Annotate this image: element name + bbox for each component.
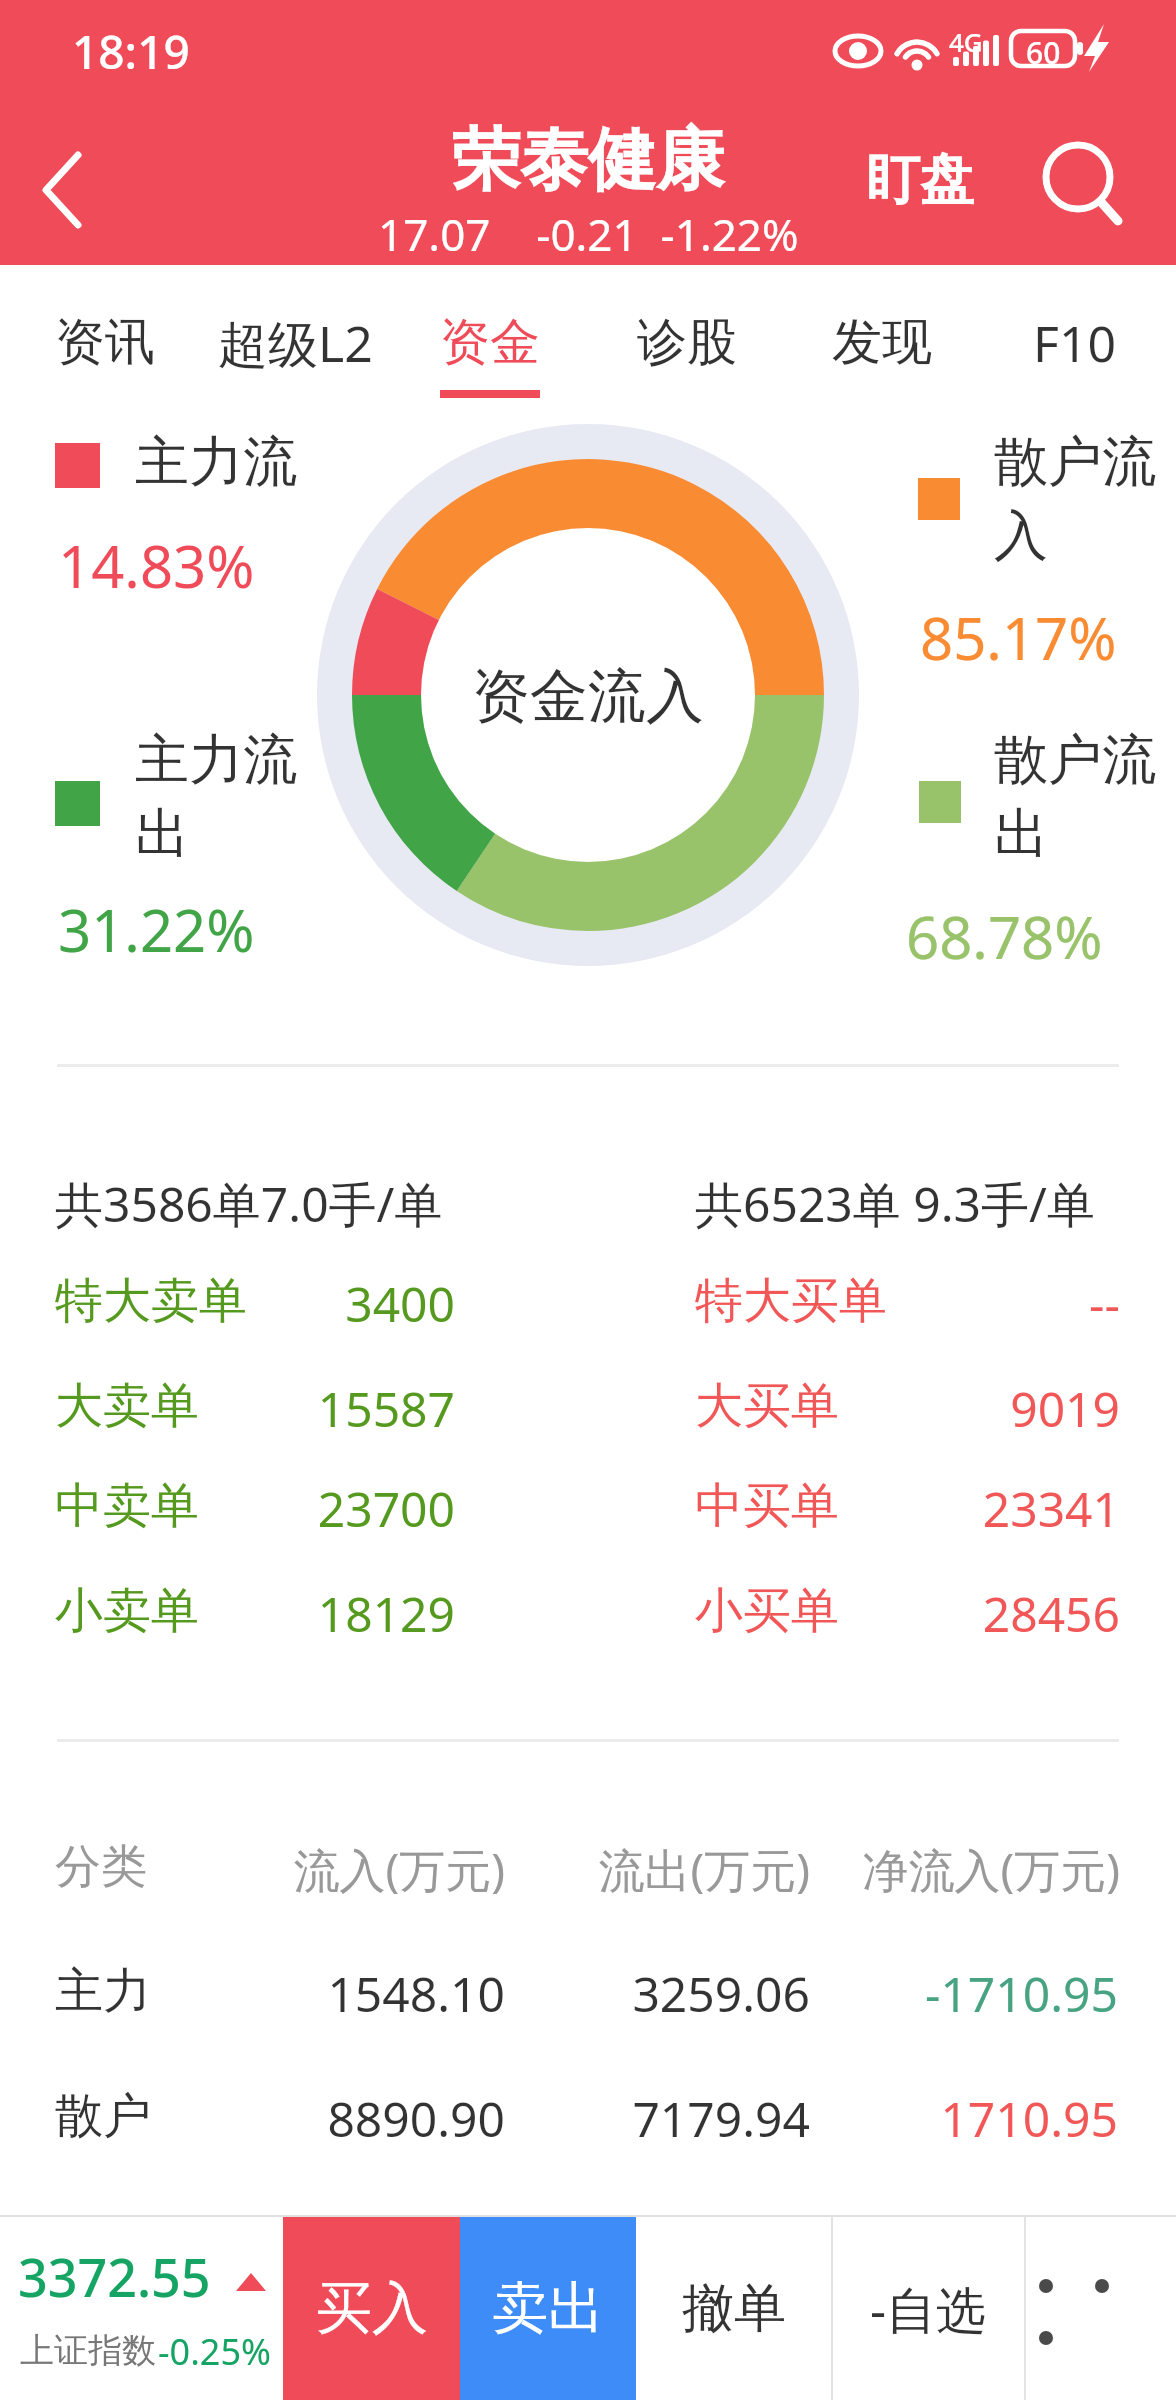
staticText: 17.07 -0.21 -1.22% bbox=[378, 204, 799, 264]
staticText: 散户流入 bbox=[994, 428, 1170, 570]
staticText: 18129 bbox=[317, 1581, 455, 1646]
button[interactable]: 资金 bbox=[425, 265, 555, 420]
staticText: -0.25% bbox=[158, 2327, 271, 2376]
staticText: 28456 bbox=[982, 1581, 1120, 1646]
staticText: 中卖单 bbox=[55, 1476, 199, 1536]
staticText: 18:19 bbox=[72, 20, 190, 83]
staticText: 散户流出 bbox=[994, 726, 1170, 868]
staticText: 资金流入 bbox=[472, 660, 704, 730]
staticText: 撤单 bbox=[682, 2276, 786, 2342]
staticText: 大卖单 bbox=[55, 1376, 199, 1436]
staticText: 卖出 bbox=[492, 2273, 604, 2344]
button[interactable]: 撤单 bbox=[636, 2217, 831, 2400]
staticText: 资讯 bbox=[55, 311, 155, 374]
staticText: 流出(万元) bbox=[598, 1838, 810, 1901]
button[interactable]: 诊股 bbox=[622, 265, 752, 420]
staticText: 3372.55 bbox=[18, 2241, 211, 2312]
button[interactable]: 盯盘 bbox=[850, 135, 990, 225]
staticText: 3259.06 bbox=[632, 1961, 810, 2026]
staticText: 共6523单 9.3手/单 bbox=[695, 1171, 1095, 1237]
staticText: -1710.95 bbox=[924, 1961, 1118, 2026]
staticText: 15587 bbox=[317, 1376, 455, 1441]
button[interactable]: 资讯 bbox=[40, 265, 170, 420]
staticText: 超级L2 bbox=[218, 309, 373, 377]
staticText: 买入 bbox=[316, 2273, 428, 2344]
staticText: 净流入(万元) bbox=[862, 1838, 1120, 1901]
staticText: -自选 bbox=[870, 2275, 987, 2343]
button[interactable]: 卖出 bbox=[460, 2217, 636, 2400]
staticText: 23700 bbox=[317, 1476, 455, 1541]
staticText: 散户 bbox=[55, 2086, 151, 2146]
button[interactable]: 3372.55 bbox=[0, 2217, 283, 2400]
button[interactable]: -自选 bbox=[833, 2217, 1024, 2400]
staticText: 盯盘 bbox=[866, 146, 974, 214]
button[interactable] bbox=[20, 130, 110, 240]
staticText: 8890.90 bbox=[327, 2086, 505, 2151]
button[interactable]: 买入 bbox=[283, 2217, 460, 2400]
button[interactable] bbox=[1026, 2217, 1176, 2400]
staticText: 小买单 bbox=[695, 1581, 839, 1641]
staticText: 4G bbox=[949, 24, 983, 59]
staticText: 23341 bbox=[982, 1476, 1120, 1541]
staticText: 9019 bbox=[1010, 1376, 1120, 1441]
staticText: 中买单 bbox=[695, 1476, 839, 1536]
button[interactable]: F10 bbox=[1010, 265, 1140, 420]
staticText: 上证指数 bbox=[20, 2329, 156, 2372]
staticText: 流入(万元) bbox=[293, 1838, 505, 1901]
button[interactable]: 超级L2 bbox=[195, 265, 395, 420]
staticText: 特大买单 bbox=[695, 1271, 887, 1331]
staticText: 发现 bbox=[832, 311, 932, 374]
staticText: 1548.10 bbox=[327, 1961, 505, 2026]
button[interactable]: 发现 bbox=[817, 265, 947, 420]
staticText: F10 bbox=[1033, 309, 1117, 377]
staticText: 85.17% bbox=[920, 598, 1117, 677]
staticText: 3400 bbox=[345, 1271, 455, 1336]
staticText: 小卖单 bbox=[55, 1581, 199, 1641]
staticText: 31.22% bbox=[58, 890, 255, 969]
staticText: 共3586单7.0手/单 bbox=[55, 1171, 443, 1237]
staticText: 大买单 bbox=[695, 1376, 839, 1436]
staticText: 7179.94 bbox=[632, 2086, 810, 2151]
staticText: 60 bbox=[1026, 32, 1061, 73]
staticText: 14.83% bbox=[58, 526, 255, 605]
staticText: 诊股 bbox=[637, 311, 737, 374]
staticText: 主力流出 bbox=[135, 726, 311, 868]
staticText: 1710.95 bbox=[940, 2086, 1118, 2151]
staticText: 荣泰健康 bbox=[452, 118, 724, 204]
staticText: 68.78% bbox=[906, 897, 1103, 976]
button[interactable] bbox=[1020, 125, 1140, 235]
staticText: -- bbox=[1089, 1271, 1120, 1336]
staticText: 特大卖单 bbox=[55, 1271, 247, 1331]
staticText: 分类 bbox=[55, 1838, 147, 1896]
staticText: 主力流 bbox=[135, 428, 297, 496]
staticText: 主力 bbox=[55, 1961, 151, 2021]
staticText: 资金 bbox=[440, 311, 540, 374]
